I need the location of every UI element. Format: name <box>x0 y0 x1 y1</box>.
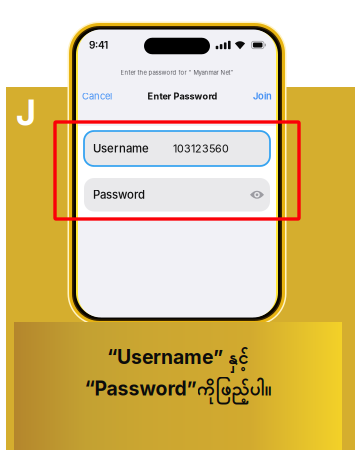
staticText: 9:41 <box>89 39 108 51</box>
staticText: Enter the password for “ Myanmar Net” <box>120 69 233 76</box>
staticText: “Password”ကိုဖြည့်ပါ။ <box>84 376 271 405</box>
staticText: J <box>16 92 36 134</box>
staticText: Join <box>253 90 272 102</box>
staticText: Password <box>93 188 145 202</box>
staticText: Enter Password <box>147 91 217 102</box>
staticText: 103123560 <box>173 142 229 155</box>
button[interactable]: Cancel <box>80 85 114 107</box>
staticText: Username <box>93 142 149 155</box>
button[interactable]: Join <box>251 85 274 107</box>
staticText: Cancel <box>82 90 112 102</box>
button[interactable]: Show password <box>244 184 270 206</box>
staticText: “Username” နှင့် <box>107 345 249 373</box>
